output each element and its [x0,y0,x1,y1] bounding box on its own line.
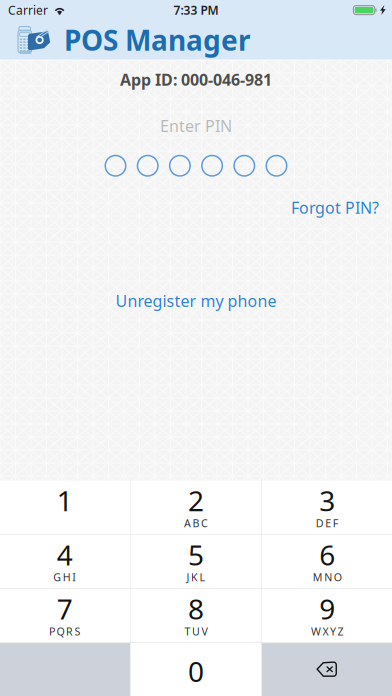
staticText: 8 [188,590,204,627]
staticText: Carrier [8,2,48,18]
staticText: 6 [319,536,335,573]
staticText: DEF [316,516,339,530]
staticText: 0 [188,653,204,690]
staticText: GHI [53,570,76,584]
button[interactable]: Delete [262,643,392,696]
staticText: App ID: 000-046-981 [120,69,272,90]
staticText: Forgot PIN? [291,197,379,218]
button[interactable]: 7 [0,589,130,642]
staticText: 1 [57,482,73,519]
button[interactable]: Unregister my phone [115,290,276,311]
button[interactable]: 3 [262,481,392,534]
button[interactable]: 1 [0,481,130,534]
staticText: WXYZ [311,624,343,638]
staticText: POS Manager [64,21,251,59]
staticText: 9 [319,590,335,627]
staticText: PQRS [49,624,80,638]
staticText: 4 [57,536,73,573]
staticText: MNO [313,570,342,584]
staticText: 2 [188,482,204,519]
staticText: Unregister my phone [115,290,276,311]
staticText: JKL [186,570,205,584]
staticText: 5 [188,536,204,573]
staticText: ABC [184,516,208,530]
button[interactable]: Forgot PIN? [291,197,379,218]
staticText: TUV [184,624,207,638]
button[interactable]: 0 [131,643,261,696]
button[interactable]: 5 [131,535,261,588]
staticText: 7:33 PM [173,2,218,18]
staticText: 3 [319,482,335,519]
button[interactable]: 6 [262,535,392,588]
staticText: Enter PIN [160,115,232,136]
button[interactable]: 9 [262,589,392,642]
button[interactable]: 8 [131,589,261,642]
staticText: 7 [57,590,73,627]
button[interactable]: 4 [0,535,130,588]
button[interactable]: 2 [131,481,261,534]
